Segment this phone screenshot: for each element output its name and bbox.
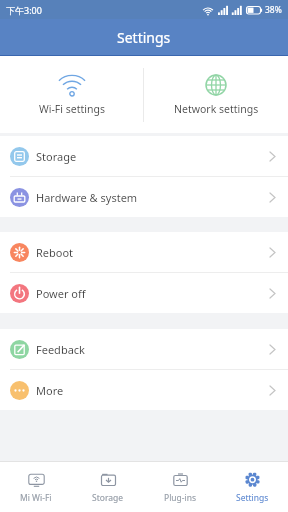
staticText: Feedback (36, 342, 85, 357)
button[interactable]: Wi-Fi settings (0, 56, 143, 133)
staticText: Power off (36, 286, 86, 301)
button[interactable]: Mi Wi-Fi (0, 462, 72, 512)
button[interactable]: Power off (0, 273, 288, 313)
button[interactable]: Settings (216, 462, 288, 512)
button[interactable]: Feedback (0, 329, 288, 369)
staticText: Settings (117, 28, 171, 47)
button[interactable]: More (0, 370, 288, 410)
button[interactable]: Storage (72, 462, 144, 512)
staticText: Settings (236, 492, 269, 504)
staticText: Wi-Fi settings (39, 102, 105, 116)
staticText: Reboot (36, 245, 74, 260)
staticText: Network settings (174, 102, 259, 116)
staticText: 下午3:00 (6, 4, 42, 16)
staticText: Mi Wi-Fi (20, 492, 52, 504)
staticText: Storage (36, 149, 77, 164)
staticText: 38% (265, 4, 282, 16)
staticText: More (36, 383, 64, 398)
button[interactable]: Network settings (144, 56, 288, 133)
staticText: Plug-ins (164, 492, 197, 504)
button[interactable]: Plug-ins (144, 462, 216, 512)
staticText: Storage (92, 492, 124, 504)
staticText: Hardware & system (36, 190, 138, 205)
button[interactable]: Storage (0, 136, 288, 176)
button[interactable]: Reboot (0, 232, 288, 272)
button[interactable]: Hardware & system (0, 177, 288, 217)
